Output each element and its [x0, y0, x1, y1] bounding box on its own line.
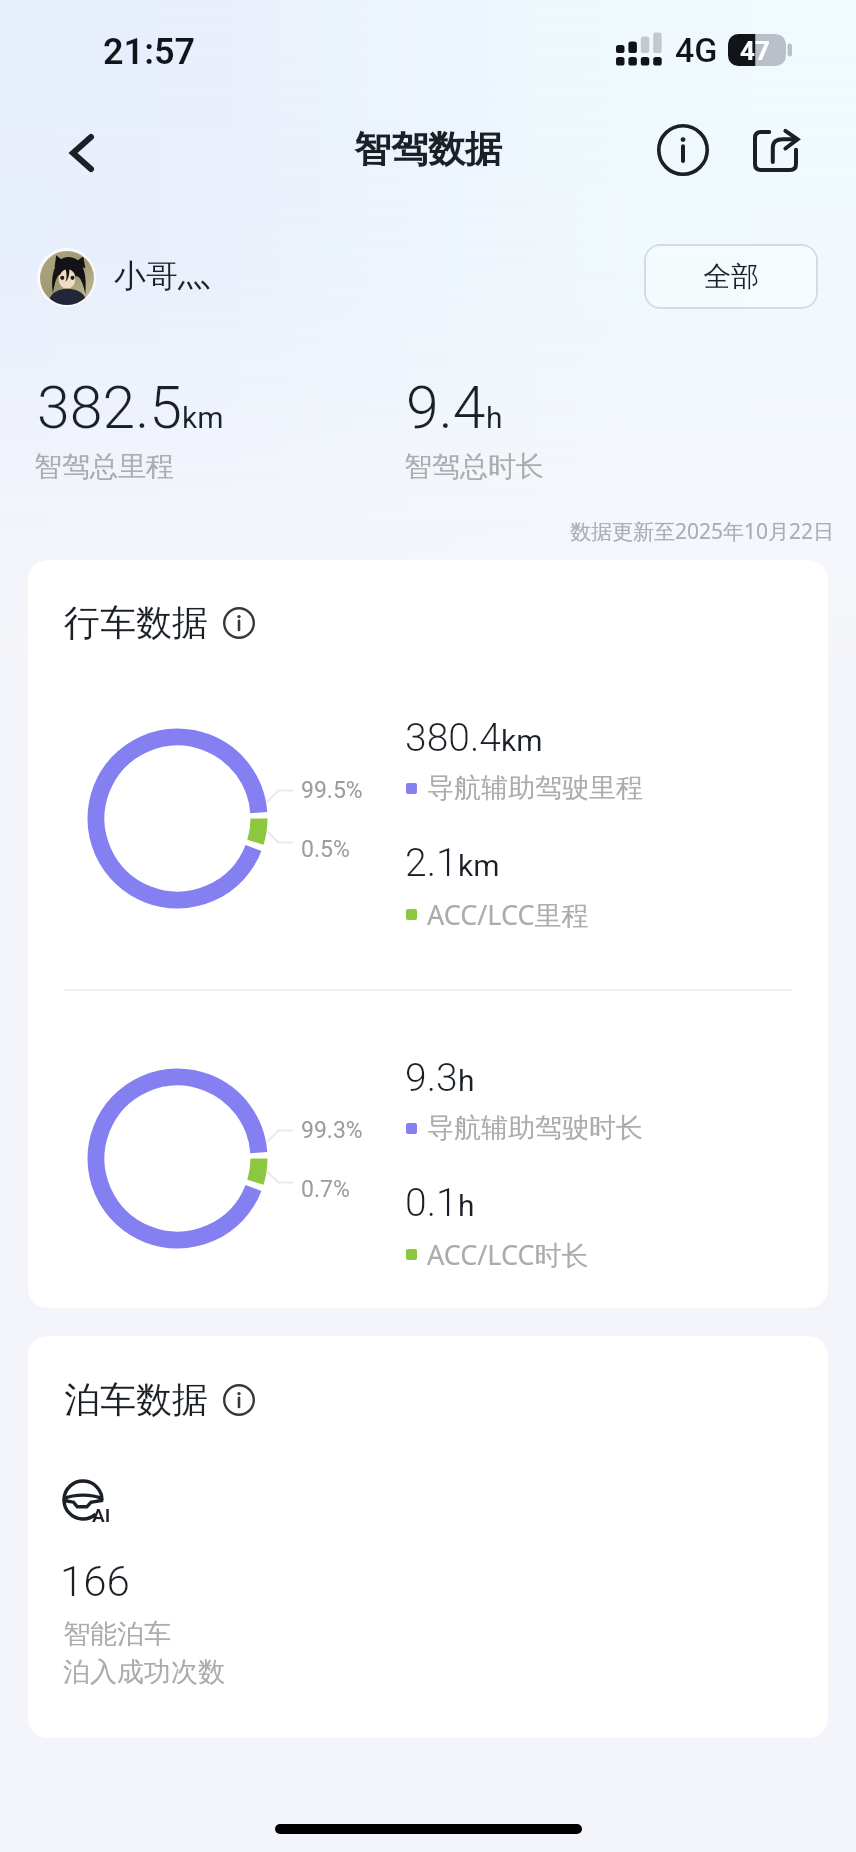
staticText: 382.5: [37, 373, 182, 442]
staticText: 智驾总时长: [404, 449, 544, 484]
button[interactable]: Share: [734, 109, 816, 191]
staticText: 0.7%: [301, 1176, 350, 1203]
staticText: 47: [740, 36, 770, 66]
staticText: 导航辅助驾驶里程: [427, 771, 643, 805]
staticText: AI: [92, 1504, 111, 1526]
staticText: 行车数据: [64, 600, 208, 645]
staticText: 智驾总里程: [34, 449, 174, 484]
staticText: 智能泊车: [63, 1617, 171, 1651]
staticText: 数据更新至2025年10月22日: [570, 517, 835, 546]
staticText: ACC/LCC里程: [427, 896, 589, 933]
staticText: 9.4: [406, 373, 486, 442]
staticText: 泊车数据: [64, 1377, 208, 1422]
staticText: 0.5%: [301, 836, 350, 863]
button[interactable]: Info: [218, 1379, 260, 1421]
staticText: km: [182, 400, 224, 435]
staticText: km: [458, 848, 500, 883]
staticText: 380.4: [405, 715, 501, 761]
button[interactable]: Back: [42, 112, 124, 194]
staticText: 导航辅助驾驶时长: [427, 1111, 643, 1145]
staticText: h: [458, 1188, 475, 1223]
staticText: 0.1: [405, 1180, 458, 1226]
staticText: 99.3%: [301, 1117, 363, 1144]
staticText: 99.5%: [301, 777, 363, 804]
staticText: km: [501, 723, 543, 758]
staticText: ACC/LCC时长: [427, 1236, 589, 1273]
staticText: 4G: [675, 30, 718, 70]
button[interactable]: Info: [218, 602, 260, 644]
staticText: 2.1: [405, 840, 458, 886]
staticText: 9.3: [405, 1055, 458, 1101]
staticText: 全部: [703, 259, 759, 294]
staticText: 21:57: [103, 31, 196, 73]
button[interactable]: Info: [642, 109, 724, 191]
button[interactable]: 全部: [644, 244, 818, 309]
staticText: 智驾数据: [354, 126, 502, 173]
staticText: h: [486, 400, 503, 435]
staticText: 泊入成功次数: [63, 1655, 225, 1689]
staticText: 166: [60, 1557, 130, 1606]
staticText: h: [458, 1063, 475, 1098]
button[interactable]: 小哥灬: [37, 248, 210, 307]
staticText: 小哥灬: [114, 256, 210, 296]
